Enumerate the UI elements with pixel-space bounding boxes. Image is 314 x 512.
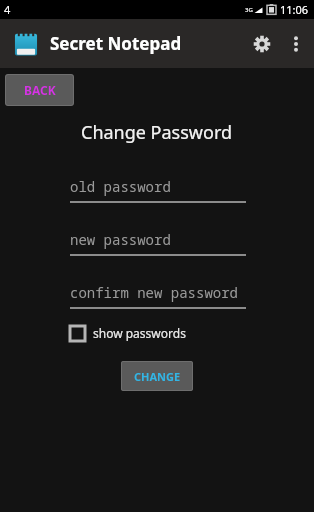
button[interactable]: Settings <box>242 24 282 64</box>
staticText: 3G <box>245 6 253 14</box>
button[interactable]: BACK <box>5 74 74 106</box>
button[interactable]: new password <box>70 230 246 256</box>
button[interactable]: old password <box>70 177 246 203</box>
staticText: CHANGE <box>134 369 181 384</box>
staticText: 4 <box>4 2 11 17</box>
staticText: 11:06 <box>280 2 309 17</box>
staticText: BACK <box>24 82 56 98</box>
staticText: Change Password <box>81 120 233 145</box>
staticText: Secret Notepad <box>50 32 182 55</box>
button[interactable]: confirm new password <box>70 283 246 309</box>
staticText: confirm new password <box>70 283 238 302</box>
staticText: show passwords <box>93 325 186 341</box>
staticText: old password <box>70 177 171 196</box>
button[interactable]: show passwords <box>70 325 186 341</box>
staticText: new password <box>70 230 171 249</box>
button[interactable]: CHANGE <box>121 361 193 391</box>
button[interactable]: More options <box>282 24 310 64</box>
